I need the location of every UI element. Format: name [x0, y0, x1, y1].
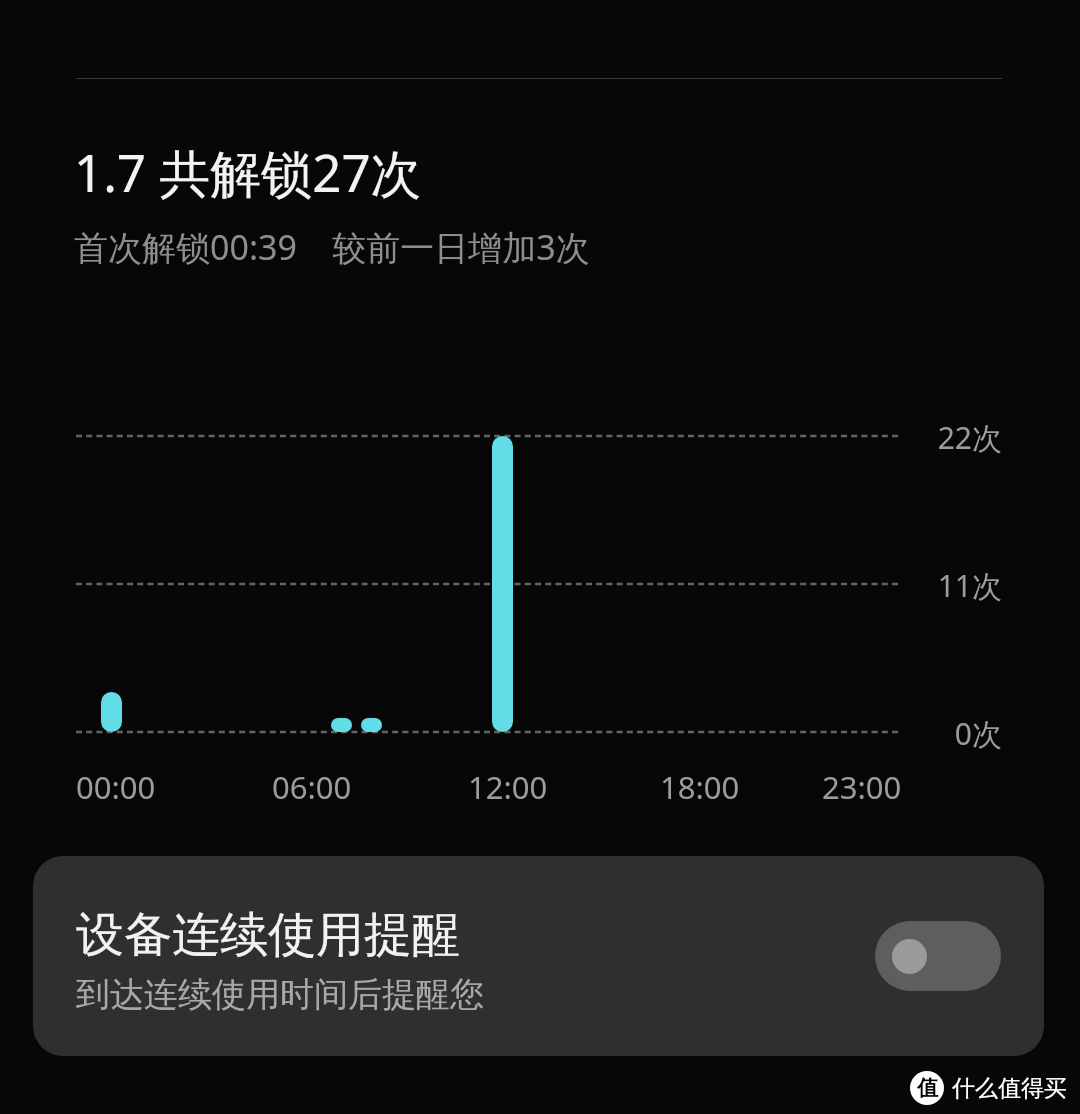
staticText: 值	[917, 1075, 938, 1101]
staticText: 06:00	[272, 766, 352, 808]
staticText: 23:00	[822, 766, 902, 808]
staticText: 18:00	[660, 766, 740, 808]
staticText: 0次	[882, 713, 1002, 754]
staticText: 首次解锁00:39 较前一日增加3次	[74, 224, 590, 270]
staticText: 22次	[882, 417, 1002, 458]
staticText: 00:00	[76, 766, 156, 808]
staticText: 到达连续使用时间后提醒您	[76, 973, 484, 1016]
staticText: 12:00	[468, 766, 548, 808]
button[interactable]: 设备连续使用提醒	[33, 856, 1044, 1056]
staticText: 11次	[882, 565, 1002, 606]
button[interactable]: 设备连续使用提醒，已关闭	[875, 921, 1001, 991]
staticText: 设备连续使用提醒	[76, 905, 460, 965]
staticText: 1.7 共解锁27次	[74, 137, 422, 207]
staticText: 什么值得买	[952, 1074, 1067, 1103]
